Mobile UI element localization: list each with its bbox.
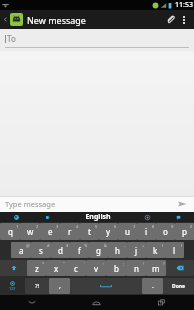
- button[interactable]: n: [126, 260, 146, 276]
- staticText: a: [19, 245, 24, 256]
- staticText: c: [74, 263, 78, 274]
- staticText: #: [47, 243, 50, 248]
- staticText: (: [162, 243, 164, 248]
- button[interactable]: ,: [49, 278, 70, 294]
- staticText: To: [7, 33, 16, 44]
- button[interactable]: Send: [175, 197, 189, 211]
- button[interactable]: Space: [70, 278, 142, 294]
- staticText: +: [142, 243, 145, 248]
- staticText: d: [58, 245, 63, 256]
- button[interactable]: g: [89, 242, 108, 258]
- button[interactable]: Recent apps: [129, 295, 194, 310]
- button[interactable]: s: [31, 242, 51, 258]
- staticText: w: [27, 226, 34, 237]
- button[interactable]: z: [27, 260, 46, 276]
- staticText: Done: [172, 283, 186, 290]
- staticText: &: [104, 243, 107, 248]
- staticText: 123: [9, 286, 16, 291]
- staticText: .: [152, 281, 154, 291]
- staticText: ': [84, 261, 85, 266]
- staticText: p: [182, 226, 187, 237]
- button[interactable]: a: [11, 242, 31, 258]
- staticText: o: [163, 226, 168, 237]
- button[interactable]: t: [80, 223, 99, 240]
- button[interactable]: l: [165, 242, 184, 258]
- staticText: 7: [133, 224, 136, 229]
- staticText: *: [42, 261, 45, 266]
- staticText: @: [26, 243, 30, 248]
- button[interactable]: k: [146, 242, 165, 258]
- button[interactable]: e: [40, 223, 60, 240]
- button[interactable]: m: [146, 260, 166, 276]
- button[interactable]: y: [99, 223, 118, 240]
- staticText: v: [94, 263, 99, 274]
- staticText: 6: [114, 224, 117, 229]
- button[interactable]: Home: [64, 295, 129, 310]
- staticText: y: [106, 226, 111, 237]
- button[interactable]: Attach: [162, 10, 178, 29]
- staticText: q: [8, 226, 13, 237]
- staticText: 8: [152, 224, 155, 229]
- button[interactable]: v: [86, 260, 106, 276]
- staticText: 1: [16, 224, 19, 229]
- button[interactable]: c: [66, 260, 86, 276]
- button[interactable]: Done: [163, 278, 194, 294]
- staticText: 3: [56, 224, 59, 229]
- staticText: ": [63, 261, 65, 266]
- staticText: 4: [76, 224, 79, 229]
- staticText: 2: [36, 224, 39, 229]
- staticText: u: [125, 226, 130, 237]
- staticText: x: [54, 263, 59, 274]
- staticText: 5: [95, 224, 98, 229]
- button[interactable]: i: [137, 223, 156, 240]
- button[interactable]: w: [20, 223, 40, 240]
- button[interactable]: More options: [178, 10, 190, 29]
- staticText: t: [88, 226, 91, 237]
- button[interactable]: Keyboard option: [132, 212, 163, 222]
- button[interactable]: Keyboard option: [32, 212, 63, 222]
- staticText: ;: [123, 261, 125, 266]
- button[interactable]: u: [118, 223, 137, 240]
- staticText: !: [143, 261, 145, 266]
- button[interactable]: h: [108, 242, 127, 258]
- staticText: h: [115, 245, 120, 256]
- staticText: g: [96, 245, 101, 256]
- staticText: %: [84, 243, 88, 248]
- button[interactable]: Backspace: [166, 260, 194, 276]
- staticText: s: [39, 245, 43, 256]
- button[interactable]: Keyboard option: [163, 212, 194, 222]
- button[interactable]: Back: [0, 295, 64, 310]
- button[interactable]: Keyboard option: [0, 212, 32, 222]
- button[interactable]: q: [0, 223, 20, 240]
- staticText: m: [152, 263, 160, 274]
- button[interactable]: Input settings: [0, 278, 25, 294]
- button[interactable]: j: [127, 242, 146, 258]
- button[interactable]: d: [51, 242, 70, 258]
- button[interactable]: b: [106, 260, 126, 276]
- staticText: r: [68, 226, 72, 237]
- button[interactable]: p: [175, 223, 194, 240]
- button[interactable]: o: [156, 223, 175, 240]
- staticText: Type message: [5, 199, 175, 209]
- button[interactable]: x: [46, 260, 66, 276]
- staticText: z: [35, 263, 39, 274]
- staticText: 11:53: [175, 0, 193, 10]
- button[interactable]: r: [60, 223, 80, 240]
- staticText: e: [48, 226, 53, 237]
- staticText: 9: [171, 224, 174, 229]
- staticText: ,: [59, 281, 61, 291]
- button[interactable]: ?!: [25, 278, 49, 294]
- staticText: ?!: [35, 282, 40, 290]
- staticText: -: [124, 243, 126, 248]
- staticText: New message: [27, 14, 86, 26]
- staticText: ): [181, 243, 183, 248]
- button[interactable]: f: [70, 242, 89, 258]
- staticText: i: [145, 226, 148, 237]
- button[interactable]: .: [142, 278, 163, 294]
- staticText: b: [114, 263, 119, 274]
- button[interactable]: Shift: [0, 260, 27, 276]
- staticText: :: [103, 261, 105, 266]
- staticText: n: [134, 263, 139, 274]
- staticText: l: [173, 245, 176, 256]
- staticText: 0: [190, 224, 193, 229]
